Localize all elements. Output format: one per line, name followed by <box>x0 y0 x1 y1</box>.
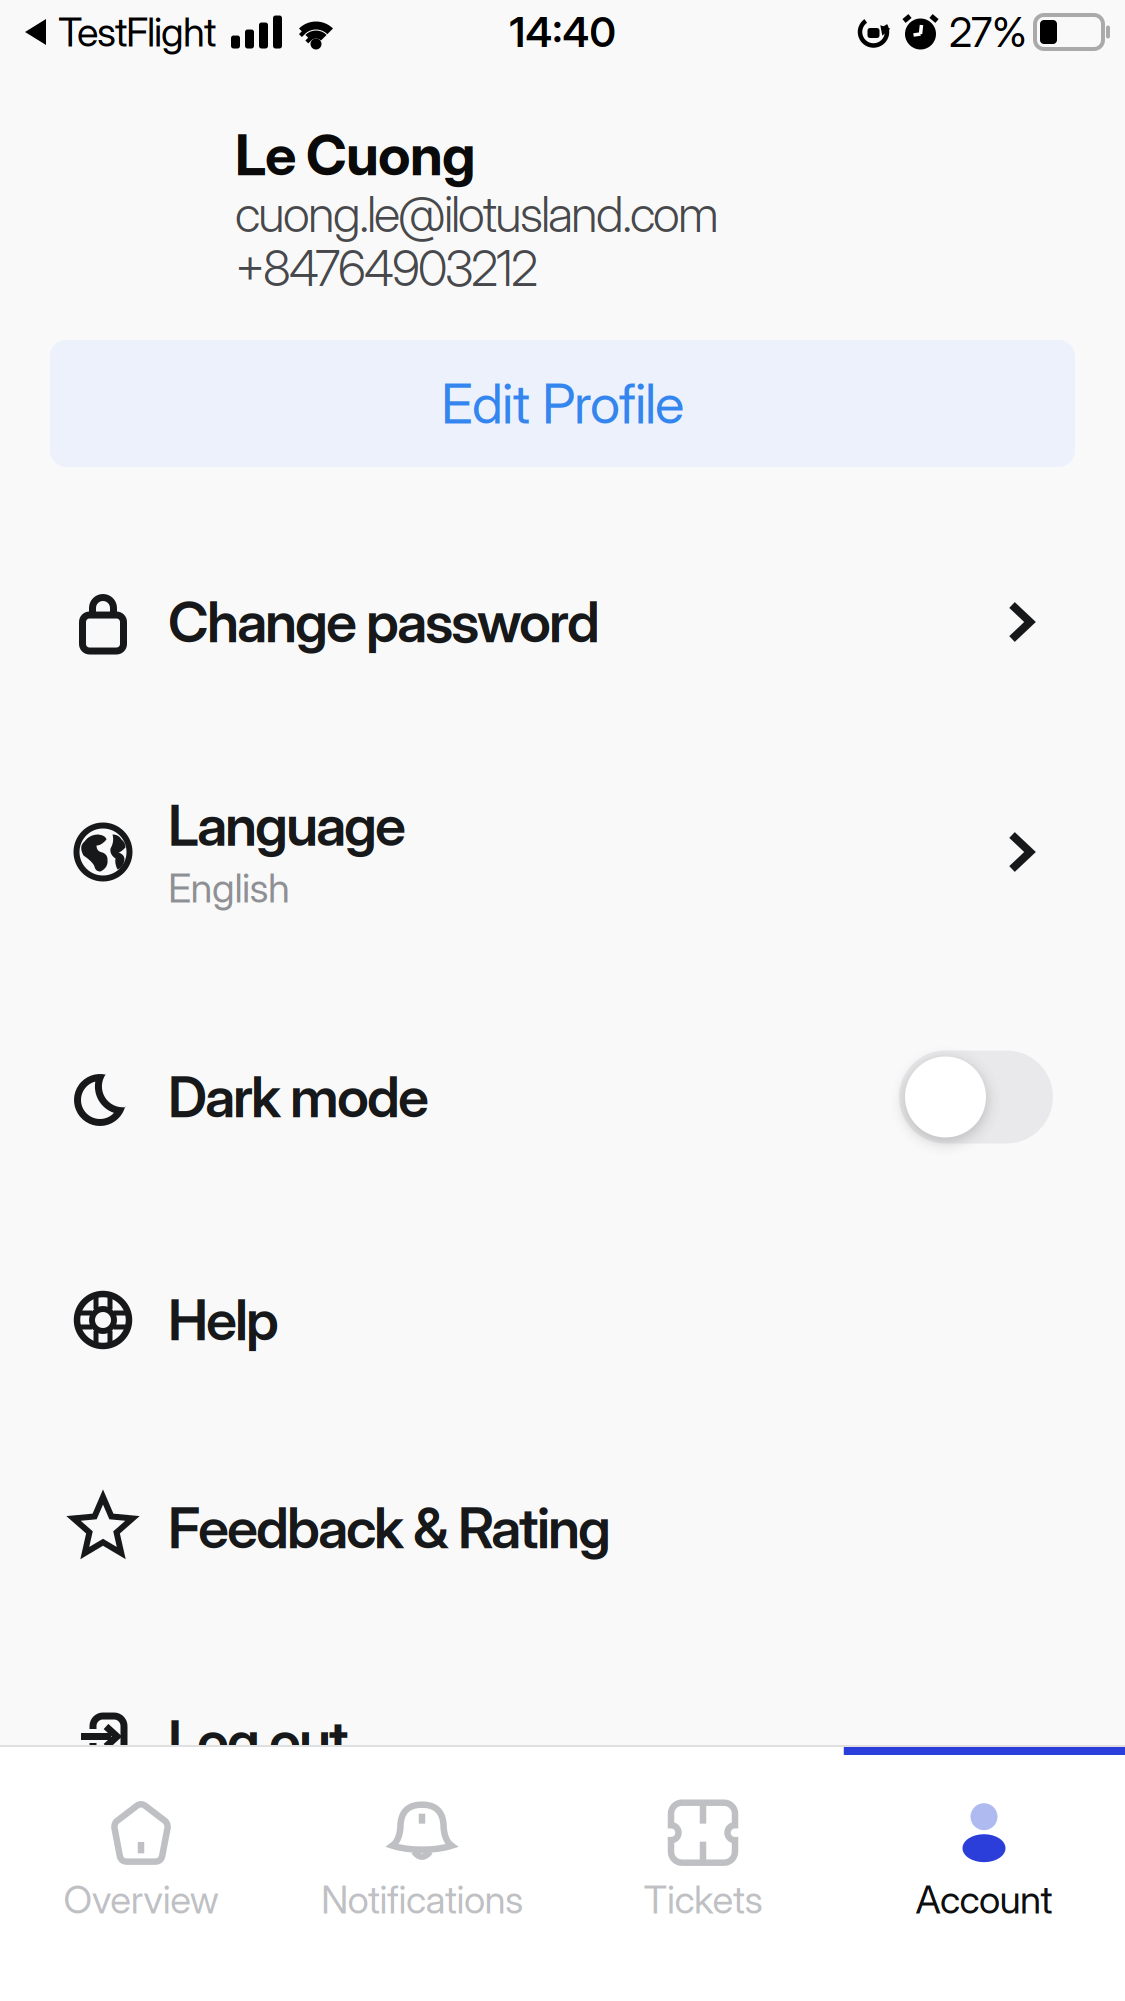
staticText: cuong.le@ilotusland.com <box>235 185 719 243</box>
staticText: Edit Profile <box>441 371 684 436</box>
button[interactable]: Edit Profile <box>50 340 1075 467</box>
button[interactable]: Tickets <box>562 1772 843 1952</box>
button[interactable]: Log out <box>0 1661 1125 1821</box>
button[interactable]: Help <box>0 1240 1125 1400</box>
staticText: Change password <box>168 589 600 655</box>
button[interactable]: Account <box>843 1772 1124 1952</box>
staticText: Notifications <box>321 1877 523 1922</box>
button[interactable]: Feedback & Rating <box>0 1448 1125 1608</box>
button[interactable]: Change password <box>0 542 1125 702</box>
staticText: 27% <box>949 8 1027 56</box>
button[interactable]: Notifications <box>281 1772 562 1952</box>
staticText: Feedback & Rating <box>168 1495 611 1561</box>
staticText: 14:40 <box>509 8 615 56</box>
staticText: Overview <box>63 1877 219 1922</box>
staticText: Language <box>168 792 406 858</box>
button[interactable]: Dark mode <box>899 1050 1053 1143</box>
staticText: Help <box>168 1287 279 1353</box>
staticText: English <box>168 864 290 912</box>
staticText: Dark mode <box>168 1064 429 1130</box>
staticText: TestFlight <box>58 8 216 56</box>
button[interactable]: Language <box>0 772 1125 932</box>
staticText: Account <box>915 1877 1052 1922</box>
staticText: Tickets <box>643 1877 762 1922</box>
staticText: Log out <box>168 1708 349 1774</box>
staticText: +84764903212 <box>235 239 538 297</box>
button[interactable]: Overview <box>0 1772 281 1952</box>
staticText: Le Cuong <box>235 122 475 188</box>
